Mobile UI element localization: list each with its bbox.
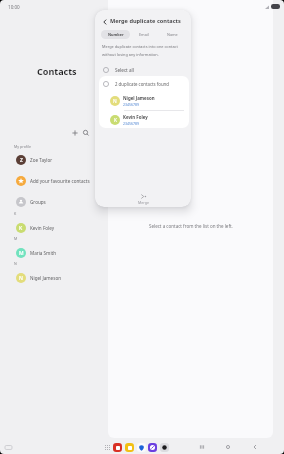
button[interactable]: App [125, 443, 134, 452]
staticText: Kevin Foley [30, 225, 55, 231]
staticText: Email [139, 32, 149, 37]
staticText: My profile [14, 144, 31, 149]
button[interactable]: Recents [197, 442, 207, 452]
button[interactable]: Home [223, 442, 233, 452]
button[interactable]: Name [158, 30, 186, 39]
button[interactable]: All apps [103, 443, 112, 452]
staticText: Contacts [37, 65, 77, 77]
button[interactable]: K [99, 111, 189, 128]
button[interactable]: N [99, 91, 189, 110]
staticText: K [14, 211, 17, 216]
button[interactable]: Add your favourite contacts [0, 174, 108, 188]
button[interactable]: Add contact [69, 127, 81, 139]
button[interactable]: Groups [0, 195, 108, 209]
staticText: Groups [30, 199, 46, 205]
staticText: Maria Smith [30, 250, 57, 256]
staticText: N [113, 98, 117, 105]
staticText: Kevin Foley [123, 114, 148, 120]
button[interactable]: App [137, 443, 146, 452]
staticText: Merge duplicate contacts [110, 17, 181, 25]
staticText: Merge [138, 200, 149, 205]
staticText: M [14, 236, 18, 241]
staticText: 2 duplicate contacts found [115, 81, 169, 87]
staticText: 23456789 [123, 102, 140, 107]
button[interactable]: 2 duplicate contacts found [99, 76, 189, 91]
button[interactable]: App [113, 443, 122, 452]
staticText: Nigel Jameson [123, 95, 155, 101]
button[interactable]: App [148, 443, 157, 452]
button[interactable]: App [160, 443, 169, 452]
button[interactable]: M [0, 246, 108, 260]
staticText: Zoe Taylor [30, 157, 53, 163]
staticText: Select all [115, 67, 134, 73]
button[interactable]: Select all [95, 64, 191, 76]
staticText: Add your favourite contacts [30, 178, 90, 184]
staticText: 23456789 [123, 121, 140, 126]
staticText: K [19, 225, 23, 232]
button[interactable]: Z [0, 153, 108, 167]
staticText: K [114, 117, 117, 124]
staticText: Number [108, 32, 124, 37]
staticText: Select a contact from the list on the le… [149, 223, 233, 229]
staticText: Z [20, 157, 23, 164]
button[interactable]: Back [250, 442, 260, 452]
button[interactable]: Number [101, 30, 130, 39]
button[interactable]: Merge [95, 190, 191, 207]
button[interactable]: N [0, 271, 108, 285]
staticText: N [19, 275, 23, 282]
staticText: N [14, 261, 17, 266]
button[interactable]: K [0, 221, 108, 235]
staticText: Merge duplicate contacts into one contac… [102, 44, 178, 57]
button[interactable]: Search [80, 127, 92, 139]
staticText: 10:00 [8, 4, 20, 10]
staticText: Nigel Jameson [30, 275, 62, 281]
staticText: Name [167, 32, 178, 37]
button[interactable]: Email [130, 30, 158, 39]
staticText: M [19, 250, 24, 257]
button[interactable]: Back [100, 17, 110, 27]
